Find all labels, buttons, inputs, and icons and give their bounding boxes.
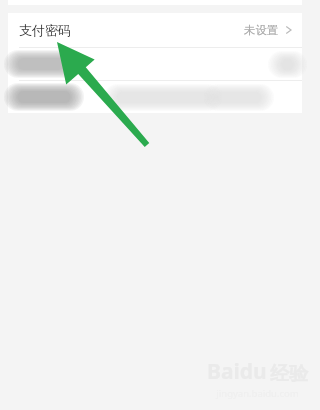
- staticText: 支付密码: [19, 22, 71, 38]
- other: More: [285, 24, 292, 36]
- button[interactable]: [8, 81, 302, 113]
- staticText: 未设置: [244, 23, 279, 37]
- button[interactable]: [8, 48, 302, 80]
- staticText: 经验: [270, 362, 308, 386]
- button[interactable]: 支付密码: [8, 13, 302, 47]
- staticText: Baidu: [207, 357, 267, 386]
